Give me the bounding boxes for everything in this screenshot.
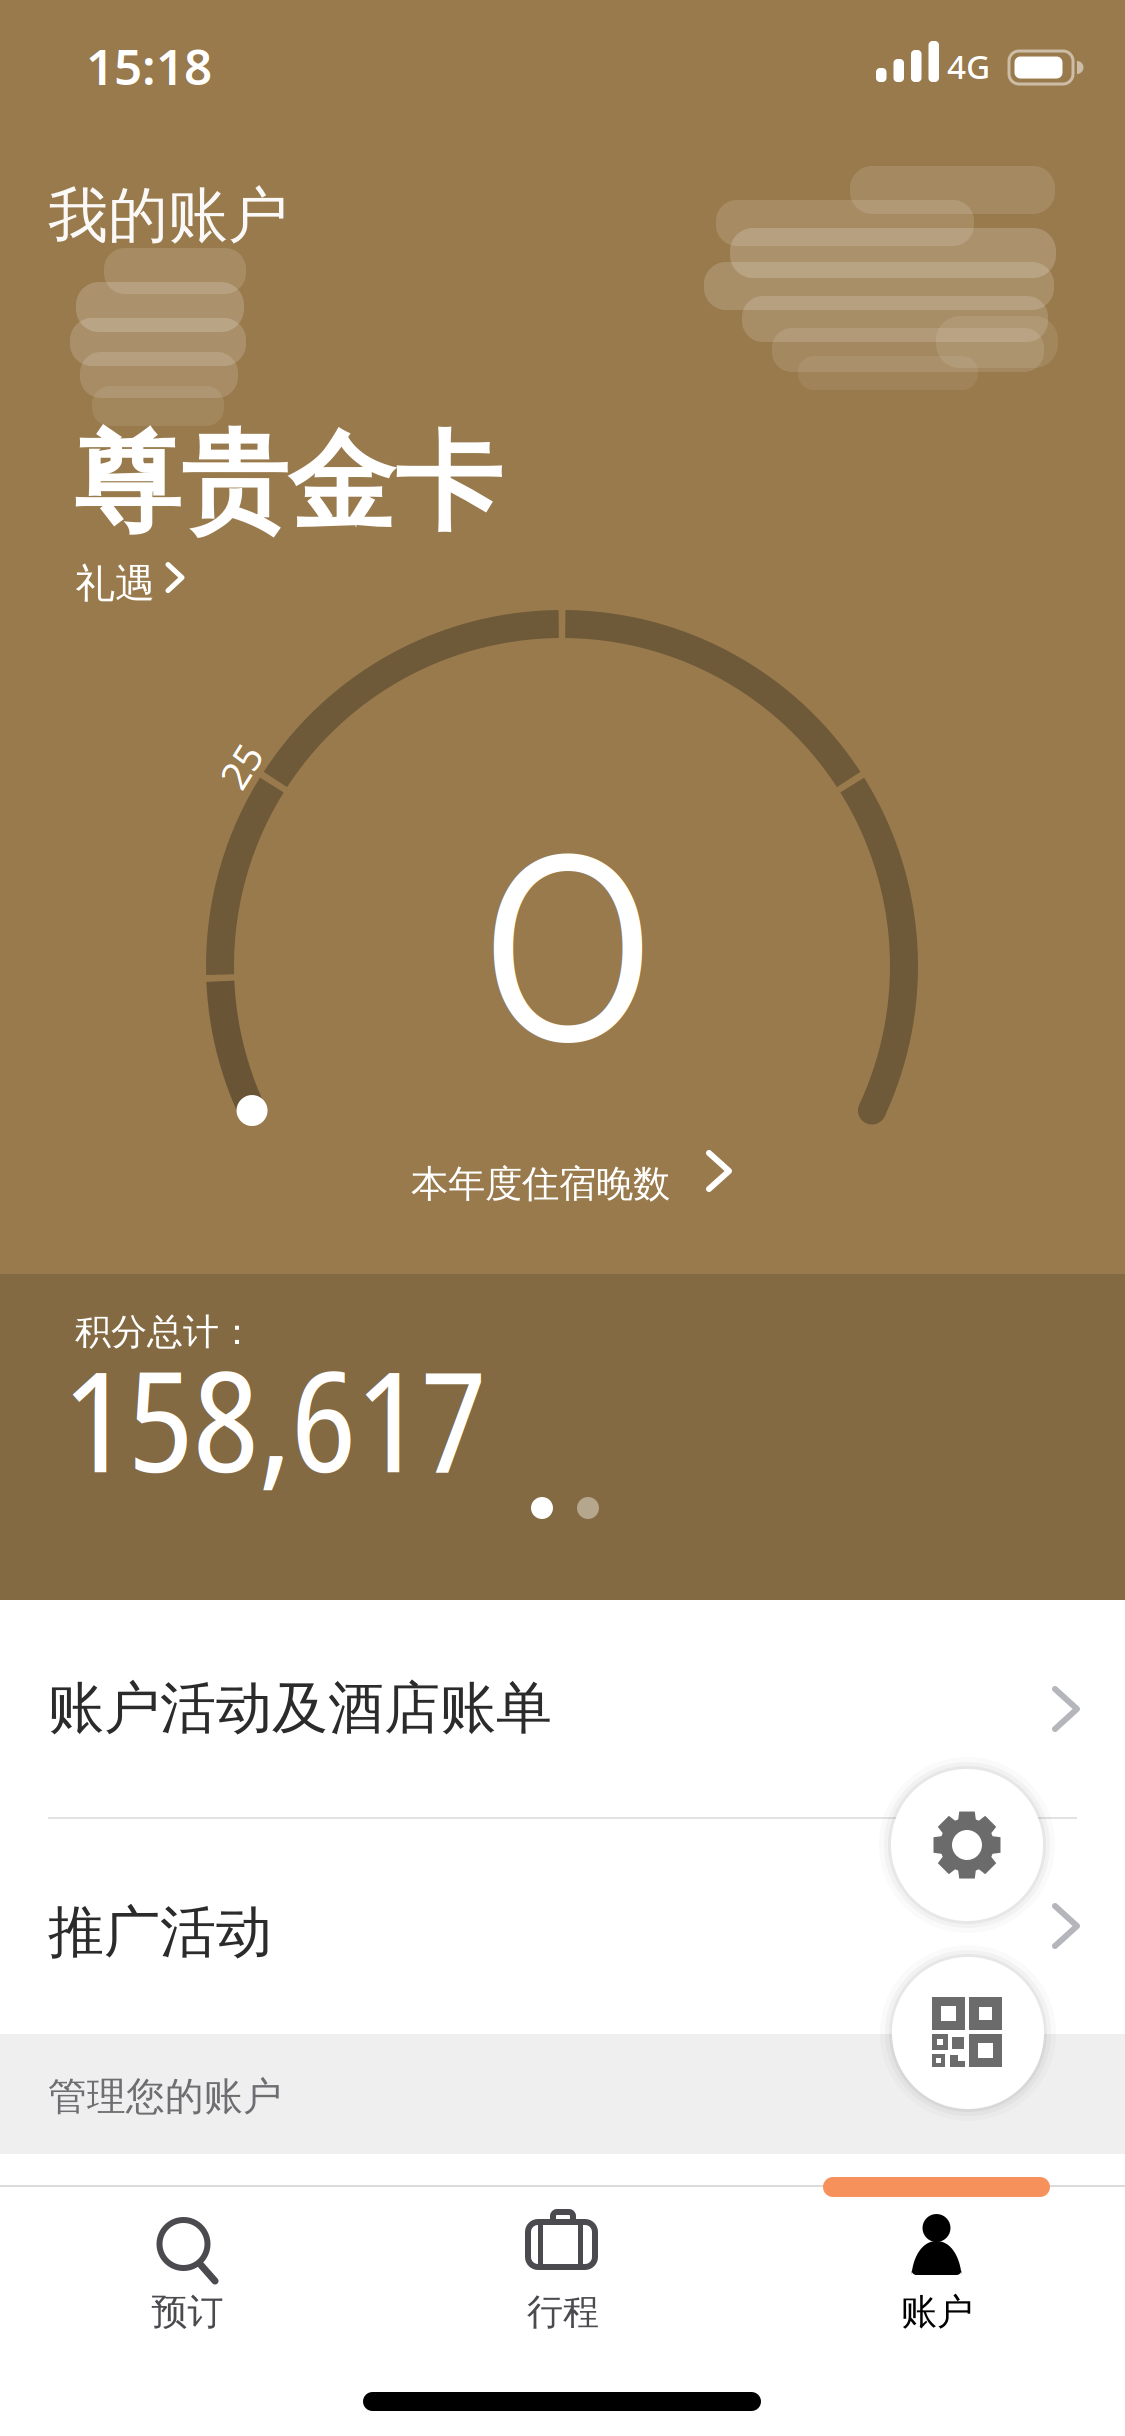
- button[interactable]: 账户: [750, 2185, 1125, 2436]
- button[interactable]: 推广活动: [0, 1819, 1125, 2436]
- staticText: 尊贵金卡: [74, 418, 502, 549]
- staticText: 账户活动及酒店账单: [48, 1674, 552, 1743]
- staticText: 0: [480, 784, 656, 1108]
- button[interactable]: [891, 1769, 1043, 1921]
- staticText: 我的账户: [48, 179, 288, 253]
- staticText: 预订: [151, 2290, 223, 2334]
- button[interactable]: 本年度住宿晚数: [411, 1161, 743, 1207]
- staticText: 礼遇: [75, 559, 155, 608]
- staticText: 推广活动: [48, 1898, 272, 1967]
- staticText: 管理您的账户: [48, 2073, 282, 2120]
- staticText: 本年度住宿晚数: [411, 1161, 670, 1207]
- staticText: 158,617: [63, 1324, 486, 1513]
- button[interactable]: 行程: [375, 2185, 1125, 2436]
- staticText: 4G: [947, 44, 990, 88]
- button[interactable]: 预订: [0, 2185, 1125, 2436]
- staticText: 积分总计：: [75, 1310, 255, 1354]
- staticText: 账户: [901, 2290, 973, 2334]
- staticText: 行程: [527, 2290, 599, 2334]
- staticText: 25: [219, 740, 263, 792]
- staticText: 15:18: [86, 33, 212, 98]
- button[interactable]: 账户活动及酒店账单: [0, 1600, 1125, 2436]
- button[interactable]: 礼遇: [75, 559, 193, 608]
- button[interactable]: [892, 1957, 1044, 2109]
